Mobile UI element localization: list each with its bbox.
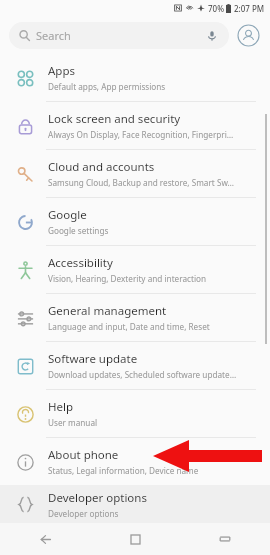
staticText: General management xyxy=(48,303,167,319)
staticText: Default apps, App permissions xyxy=(48,81,166,92)
staticText: Download updates, Scheduled software upd… xyxy=(48,369,237,380)
button[interactable]: Voice search xyxy=(205,29,219,43)
staticText: Lock screen and security xyxy=(48,111,181,127)
staticText: Cloud and accounts xyxy=(48,159,155,175)
button[interactable]: Google xyxy=(0,198,270,245)
button[interactable]: Software update xyxy=(0,342,270,389)
button[interactable]: Account xyxy=(236,23,261,48)
button[interactable]: About phone xyxy=(0,438,270,485)
button[interactable]: Apps xyxy=(0,54,270,101)
button[interactable]: Accessibility xyxy=(0,246,270,293)
staticText: 2:07 PM xyxy=(234,3,265,14)
staticText: Google xyxy=(48,207,87,223)
staticText: Language and input, Date and time, Reset xyxy=(48,321,210,332)
staticText: Google settings xyxy=(48,225,109,236)
button[interactable]: Recents xyxy=(180,523,270,555)
button[interactable]: Developer options xyxy=(0,485,270,523)
staticText: Developer options xyxy=(48,490,147,506)
staticText: Accessibility xyxy=(48,255,113,271)
button[interactable]: General management xyxy=(0,294,270,341)
staticText: Samsung Cloud, Backup and restore, Smart… xyxy=(48,177,234,188)
staticText: Software update xyxy=(48,351,138,367)
staticText: About phone xyxy=(48,447,119,463)
staticText: Vision, Hearing, Dexterity and interacti… xyxy=(48,273,207,284)
staticText: User manual xyxy=(48,417,98,428)
staticText: 70% xyxy=(208,3,224,14)
button[interactable]: Lock screen and security xyxy=(0,102,270,149)
button[interactable]: Help xyxy=(0,390,270,437)
button[interactable]: Cloud and accounts xyxy=(0,150,270,197)
button[interactable]: Back xyxy=(0,523,90,555)
staticText: Help xyxy=(48,399,74,415)
staticText: Developer options xyxy=(48,508,119,519)
staticText: Apps xyxy=(48,63,76,79)
staticText: Status, Legal information, Device name xyxy=(48,465,199,476)
staticText: Always On Display, Face Recognition, Fin… xyxy=(48,129,234,140)
staticText: Search xyxy=(36,28,71,43)
button[interactable]: Search xyxy=(9,22,229,49)
button[interactable]: Home xyxy=(90,523,180,555)
